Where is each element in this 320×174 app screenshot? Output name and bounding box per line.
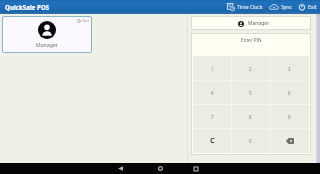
staticText: 7 <box>211 114 214 120</box>
button[interactable]: 0 <box>231 129 270 153</box>
staticText: C <box>210 136 215 146</box>
staticText: Time Clock <box>237 4 263 11</box>
button[interactable]: 7 <box>193 105 231 129</box>
button[interactable]: 1 <box>193 56 231 81</box>
staticText: Sync <box>281 4 292 11</box>
button[interactable]: Time Clock <box>226 0 264 14</box>
staticText: 0 <box>249 138 252 144</box>
button[interactable]: 2 <box>231 56 270 81</box>
button[interactable]: 3 <box>270 56 309 81</box>
staticText: Out <box>82 18 90 23</box>
button[interactable]: Enter PIN <box>193 35 309 44</box>
staticText: 3 <box>288 66 291 72</box>
staticText: Exit <box>308 4 317 11</box>
staticText: 6 <box>288 90 291 96</box>
button[interactable]: C <box>193 129 231 153</box>
button[interactable]: 5 <box>231 81 270 105</box>
staticText: QuickSale POS <box>5 3 50 11</box>
staticText: 4 <box>211 90 214 96</box>
button[interactable]: 4 <box>193 81 231 105</box>
staticText: 1 <box>211 66 214 72</box>
button[interactable]: Back <box>102 163 138 174</box>
staticText: 9 <box>288 114 291 120</box>
staticText: Manager <box>248 20 270 27</box>
button[interactable]: 6 <box>270 81 309 105</box>
button[interactable]: Home <box>142 163 178 174</box>
staticText: 2 <box>249 66 252 72</box>
button[interactable]: Manager <box>191 16 311 30</box>
button[interactable]: Sync <box>268 0 293 14</box>
button[interactable]: 9 <box>270 105 309 129</box>
button[interactable]: Manager <box>2 16 92 53</box>
staticText: 8 <box>249 114 252 120</box>
button[interactable]: Recent apps <box>178 163 214 174</box>
staticText: 5 <box>249 90 252 96</box>
button[interactable]: 8 <box>231 105 270 129</box>
button[interactable] <box>270 129 309 153</box>
staticText: Manager <box>36 41 58 48</box>
staticText: Enter PIN <box>241 37 262 43</box>
button[interactable]: Exit <box>297 0 318 14</box>
